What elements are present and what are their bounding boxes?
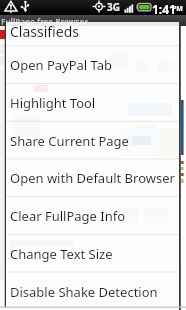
staticText: PM: [172, 4, 183, 14]
staticText: FullPage free Browser: [1, 16, 88, 27]
button[interactable]: Open with Default Browser: [6, 158, 180, 196]
staticText: Classifieds: [10, 22, 79, 41]
button[interactable]: Change Text Size: [6, 234, 180, 272]
staticText: Share Current Page: [10, 132, 129, 150]
staticText: 1:41: [152, 1, 176, 16]
staticText: Clear FullPage Info: [10, 207, 126, 225]
staticText: Highlight Tool: [10, 94, 96, 112]
button[interactable]: Highlight Tool: [6, 83, 180, 121]
staticText: Open with Default Browser: [10, 169, 175, 187]
staticText: Disable Shake Detection: [10, 283, 158, 301]
staticText: Change Text Size: [10, 245, 113, 263]
button[interactable]: Disable Shake Detection: [6, 272, 180, 310]
button[interactable]: Share Current Page: [6, 121, 180, 159]
button[interactable]: Open PayPal Tab: [6, 45, 180, 83]
staticText: Open PayPal Tab: [10, 56, 113, 74]
staticText: 3G: [107, 0, 120, 14]
button[interactable]: Clear FullPage Info: [6, 196, 180, 234]
